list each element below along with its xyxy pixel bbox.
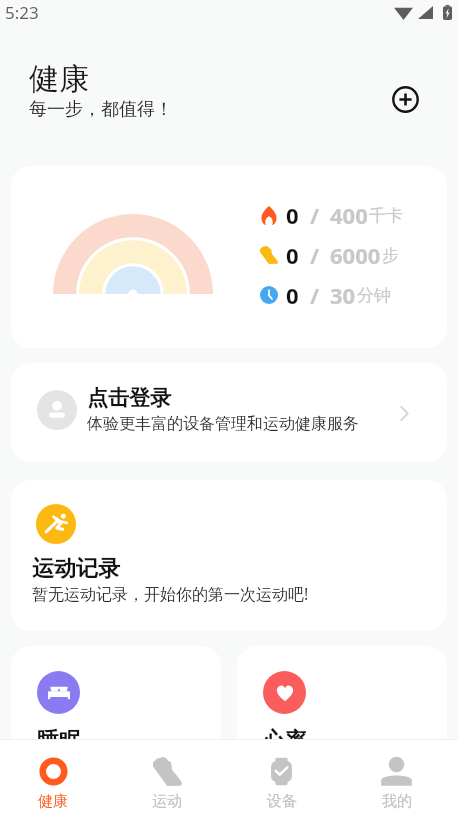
staticText: 400 [330,200,368,230]
staticText: 我的 [382,792,412,811]
staticText: 点击登录 [87,385,171,411]
staticText: 6000 [330,240,381,270]
button[interactable]: 0 [11,166,447,348]
staticText: 运动 [152,792,182,811]
staticText: / [310,280,320,310]
staticText: 0 [286,240,299,270]
button[interactable]: 运动记录 [11,480,447,631]
staticText: 分钟 [357,285,391,306]
staticText: 5:23 [5,1,39,24]
staticText: 步 [382,245,399,266]
button[interactable]: 我的 [339,740,454,820]
staticText: / [310,200,320,230]
button[interactable]: 睡眠 [11,646,221,776]
staticText: 每一步，都值得！ [29,98,173,121]
staticText: 健康 [38,792,68,811]
button[interactable]: 设备 [224,740,339,820]
staticText: 运动记录 [32,555,120,583]
button[interactable]: 健康 [0,740,110,820]
staticText: / [310,240,320,270]
staticText: 暂无运动记录，开始你的第一次运动吧! [32,583,309,605]
staticText: 体验更丰富的设备管理和运动健康服务 [87,414,359,434]
staticText: 30 [330,280,356,310]
button[interactable]: 点击登录 [11,363,447,462]
staticText: 睡眠 [37,727,81,755]
staticText: 0 [286,200,299,230]
staticText: 千卡 [369,205,403,226]
button[interactable]: 运动 [110,740,224,820]
staticText: 健康 [29,60,89,98]
staticText: 心率 [263,727,307,755]
button[interactable]: Add [388,82,422,116]
staticText: 0 [286,280,299,310]
button[interactable]: 心率 [237,646,447,776]
staticText: 设备 [267,792,297,811]
